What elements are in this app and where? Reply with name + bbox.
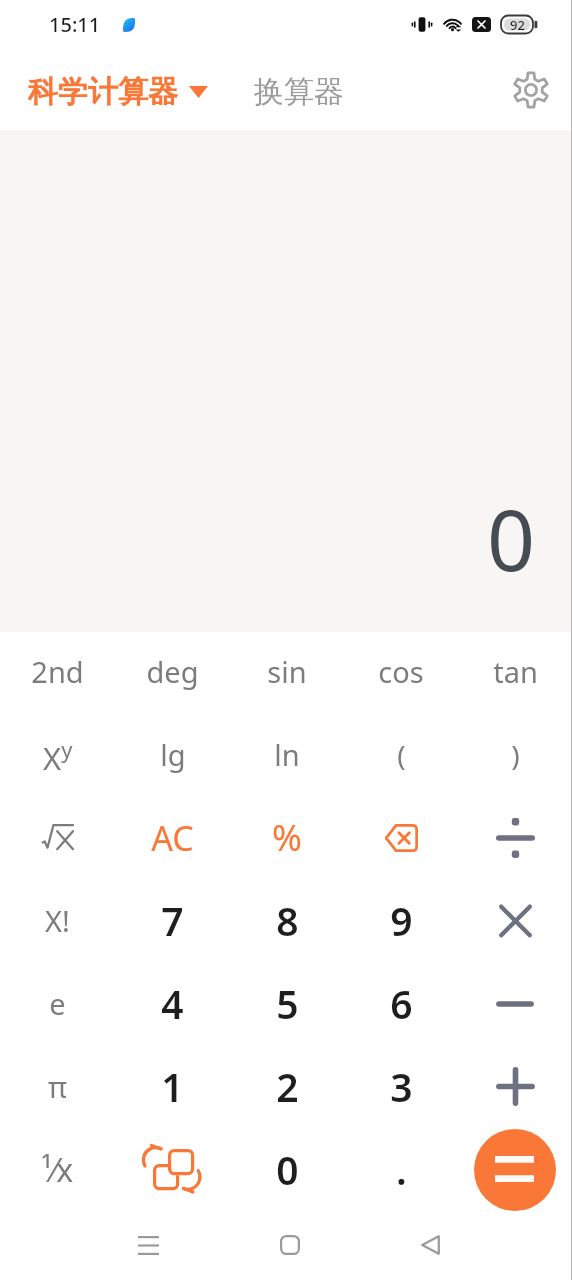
button[interactable]: Back [402, 1217, 458, 1273]
button[interactable]: 科学计算器 [22, 67, 214, 117]
staticText: 7 [161, 894, 184, 947]
staticText: 0 [276, 1143, 299, 1196]
staticText: 6 [390, 977, 413, 1030]
staticText: 科学计算器 [28, 73, 178, 111]
staticText: deg [146, 652, 199, 691]
button[interactable]: AC [115, 798, 230, 881]
staticText: 8 [276, 894, 299, 947]
button[interactable]: Settings [505, 64, 557, 116]
button[interactable]: 6 [344, 964, 458, 1047]
staticText: e [49, 984, 66, 1023]
staticText: X! [45, 901, 70, 940]
button[interactable]: ( [344, 715, 458, 798]
staticText: ) [511, 736, 520, 774]
staticText: 3 [390, 1060, 413, 1113]
button[interactable]: Backspace [344, 798, 458, 881]
staticText: lg [160, 735, 186, 774]
button[interactable]: deg [115, 632, 230, 715]
button[interactable]: lg [115, 715, 230, 798]
button[interactable]: . [344, 1130, 458, 1213]
button[interactable]: e [0, 964, 115, 1047]
staticText: 5 [276, 977, 299, 1030]
button[interactable]: X to the power of Y [0, 715, 115, 798]
staticText: ¹⁄x [41, 1148, 74, 1192]
button[interactable]: 7 [115, 881, 230, 964]
button[interactable]: ln [230, 715, 344, 798]
staticText: . [396, 1143, 407, 1196]
staticText: π [48, 1067, 67, 1106]
staticText: 1 [161, 1060, 184, 1113]
button[interactable]: One over X [0, 1130, 115, 1213]
staticText: 9 [390, 894, 413, 947]
staticText: 2nd [31, 652, 84, 691]
button[interactable]: Square root [0, 798, 115, 881]
button[interactable]: Multiply [458, 881, 572, 964]
staticText: 换算器 [254, 73, 344, 111]
button[interactable]: 0 [230, 1130, 344, 1213]
button[interactable]: 换算器 [248, 67, 350, 117]
button[interactable]: Recents [120, 1217, 176, 1273]
staticText: AC [151, 815, 194, 861]
button[interactable]: Home [262, 1217, 318, 1273]
button[interactable]: 8 [230, 881, 344, 964]
staticText: 15:11 [49, 11, 101, 38]
staticText: Xy [43, 734, 73, 779]
button[interactable]: tan [458, 632, 572, 715]
staticText: % [272, 813, 302, 862]
button[interactable]: 2 [230, 1047, 344, 1130]
button[interactable]: Convert [115, 1130, 230, 1213]
button[interactable]: 1 [115, 1047, 230, 1130]
button[interactable]: Divide [458, 798, 572, 881]
staticText: 0 [487, 481, 536, 595]
button[interactable]: 2nd [0, 632, 115, 715]
staticText: tan [493, 652, 538, 691]
staticText: ( [397, 736, 406, 774]
staticText: cos [378, 652, 424, 691]
staticText: 4 [161, 977, 184, 1030]
button[interactable]: % [230, 798, 344, 881]
staticText: sin [267, 652, 307, 691]
button[interactable]: 9 [344, 881, 458, 964]
button[interactable]: Minus [458, 964, 572, 1047]
staticText: 2 [276, 1060, 299, 1113]
staticText: ln [274, 735, 300, 774]
button[interactable]: Plus [458, 1047, 572, 1130]
button[interactable]: cos [344, 632, 458, 715]
button[interactable]: 3 [344, 1047, 458, 1130]
button[interactable]: 4 [115, 964, 230, 1047]
button[interactable]: Equals [458, 1130, 572, 1213]
button[interactable]: 5 [230, 964, 344, 1047]
staticText: 92 [510, 16, 525, 34]
button[interactable]: π [0, 1047, 115, 1130]
button[interactable]: ) [458, 715, 572, 798]
button[interactable]: sin [230, 632, 344, 715]
button[interactable]: X! [0, 881, 115, 964]
